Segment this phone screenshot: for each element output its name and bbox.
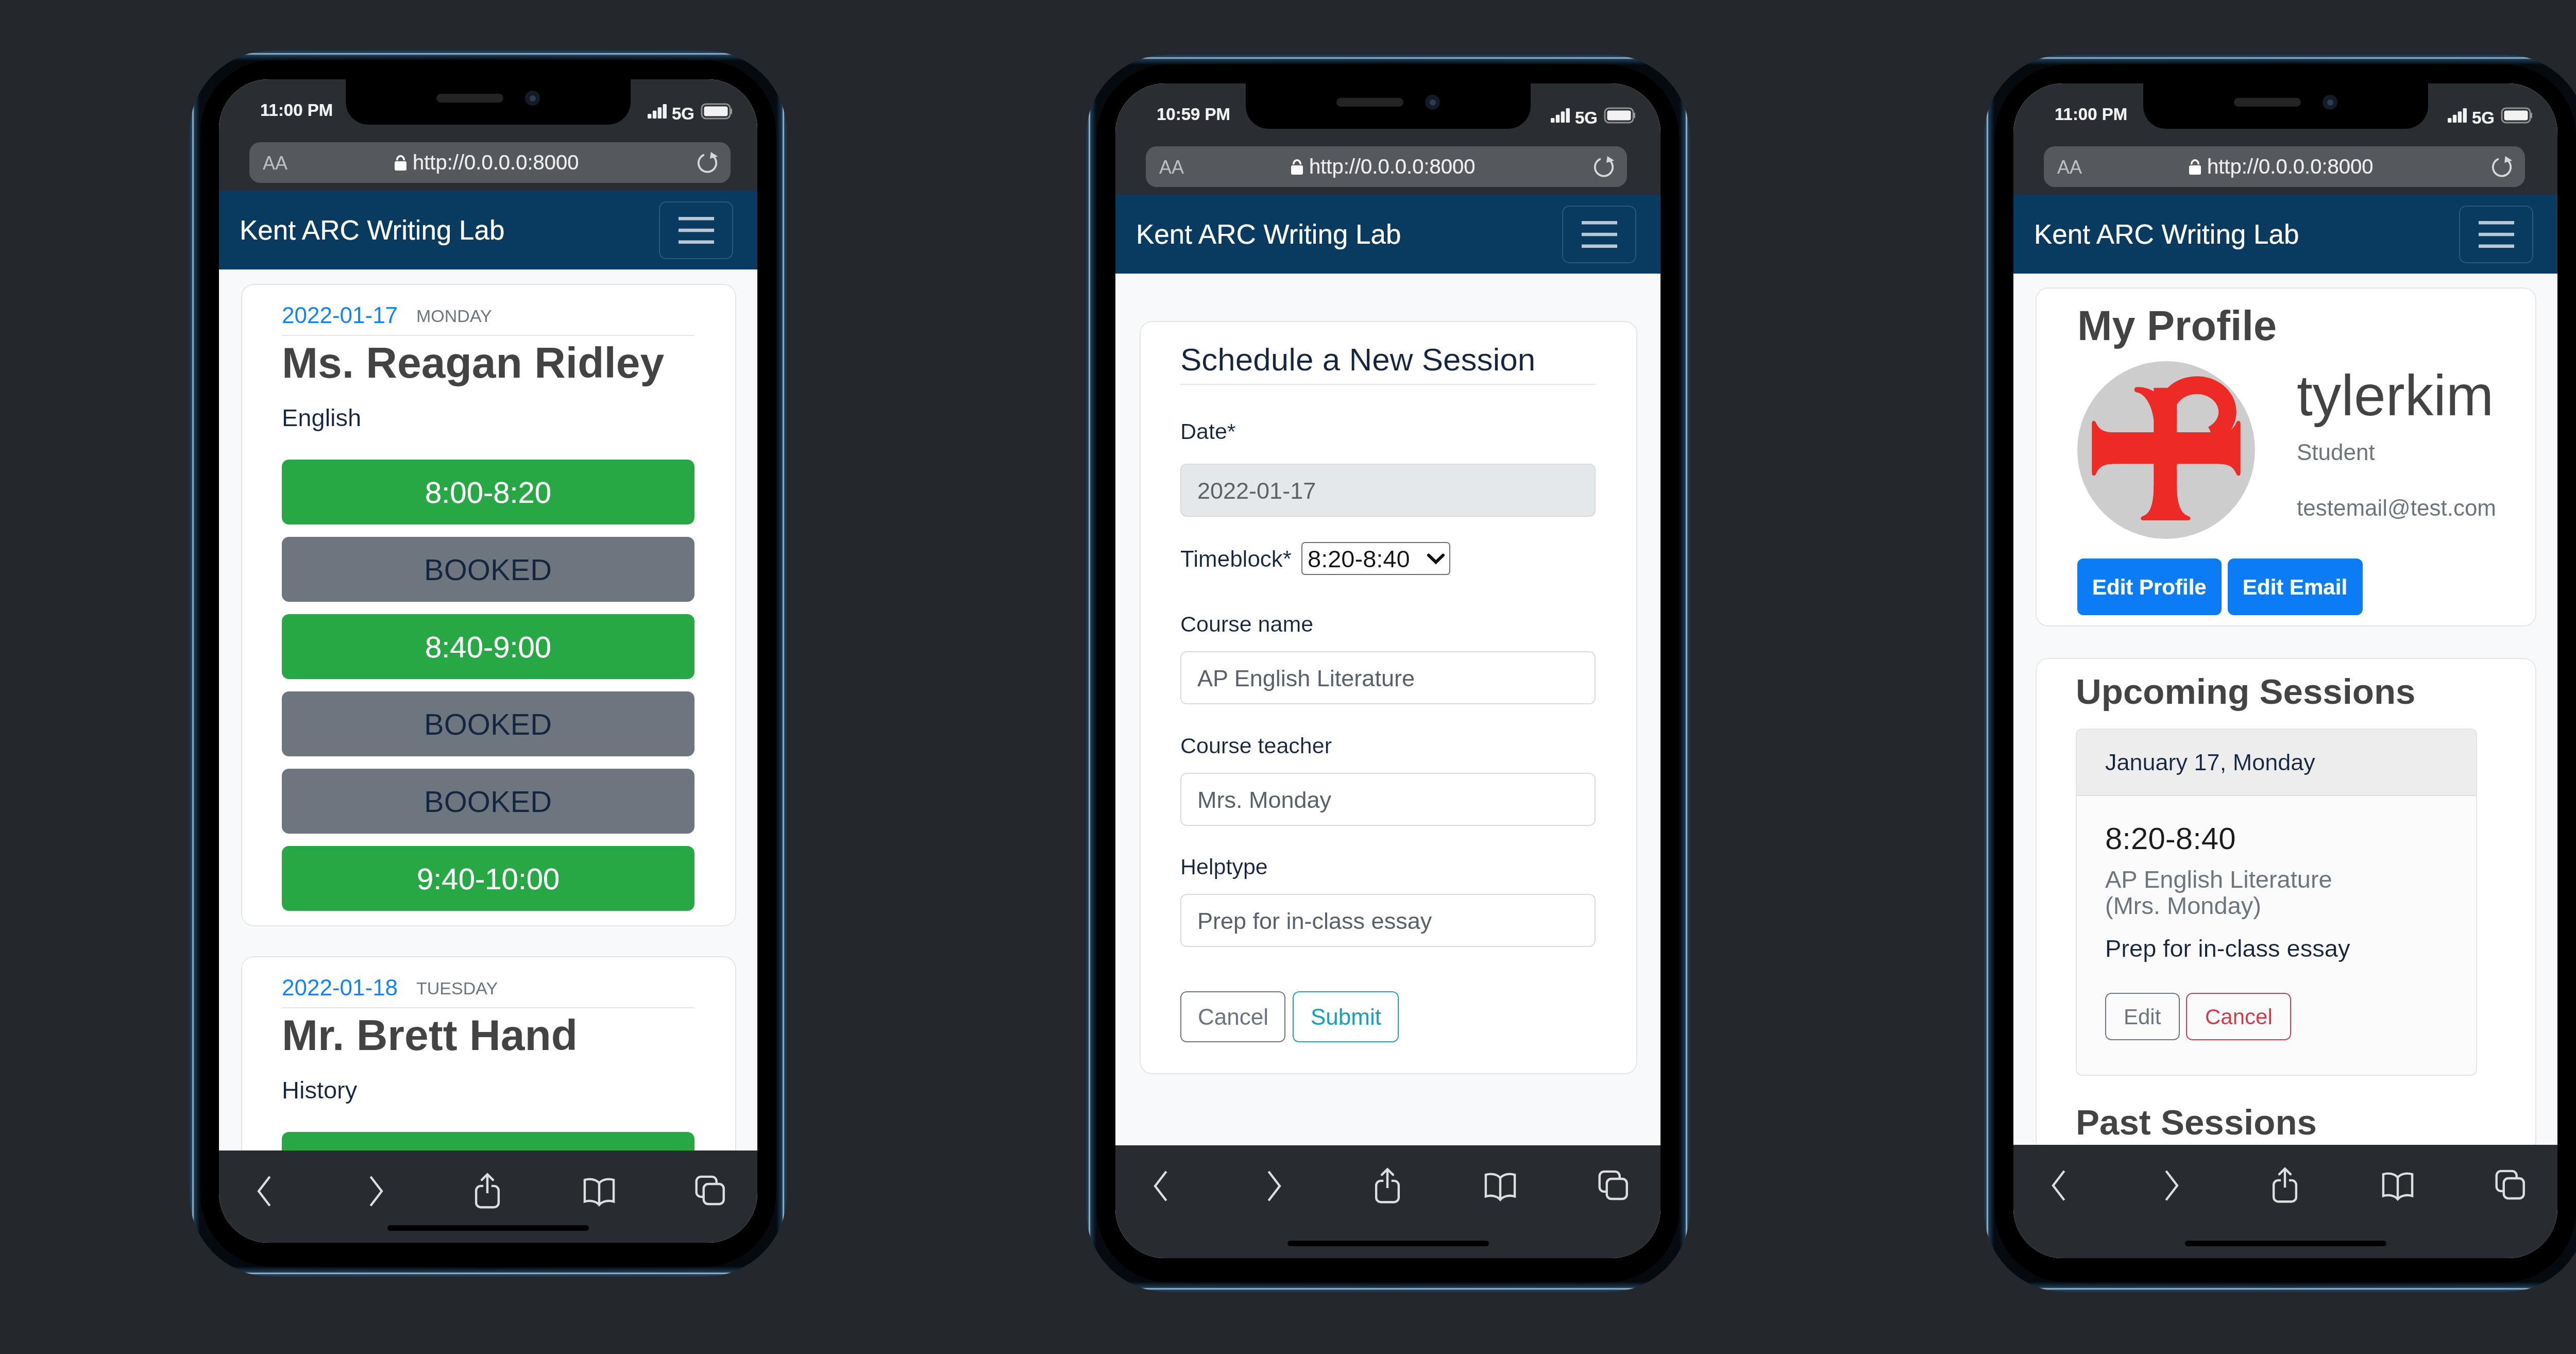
staticText: MONDAY [416, 306, 492, 326]
staticText: AP English Literature [1197, 665, 1415, 691]
staticText: http://0.0.0.0:8000 [413, 151, 579, 174]
staticText: AA [263, 153, 288, 173]
staticText: tylerkim [2297, 364, 2494, 428]
staticText: http://0.0.0.0:8000 [1309, 155, 1476, 178]
button[interactable]: Mrs. Monday [1180, 773, 1596, 826]
button[interactable]: Tabs [682, 1163, 739, 1220]
button[interactable]: 8:00-8:20 [282, 1132, 694, 1197]
staticText: 5G [1575, 108, 1598, 127]
staticText: Kent ARC Writing Lab [1136, 219, 1401, 249]
button[interactable]: Back [236, 1163, 293, 1220]
button[interactable]: Bookmarks [2369, 1157, 2426, 1214]
staticText: 11:00 PM [260, 100, 333, 120]
button[interactable]: Back [1132, 1158, 1189, 1214]
staticText: BOOKED [424, 785, 552, 818]
staticText: 9:40-10:00 [417, 862, 560, 895]
staticText: Ms. Reagan Ridley [282, 338, 665, 387]
staticText: 5G [672, 104, 695, 123]
staticText: 8:20-8:40 [2105, 821, 2236, 856]
staticText: Cancel [1198, 1004, 1268, 1029]
staticText: Course teacher [1180, 733, 1332, 758]
button[interactable]: Edit Email [2228, 558, 2363, 615]
button[interactable]: Prep for in-class essay [1180, 894, 1596, 947]
staticText: Edit Email [2243, 575, 2348, 599]
staticText: Date* [1180, 419, 1236, 444]
button[interactable]: Share [459, 1163, 516, 1220]
staticText: 10:59 PM [1157, 105, 1231, 124]
button[interactable]: 9:40-10:00 [282, 846, 694, 911]
button[interactable]: 2022-01-17 [1180, 464, 1596, 517]
button[interactable]: Forward [348, 1163, 404, 1220]
staticText: Upcoming Sessions [2076, 672, 2416, 712]
staticText: 2022-01-17 [282, 302, 398, 328]
staticText: Timeblock* [1180, 546, 1292, 571]
staticText: January 17, Monday [2105, 749, 2315, 775]
staticText: 8:00-8:20 [425, 1148, 552, 1181]
button[interactable]: Share [2257, 1157, 2313, 1214]
button[interactable]: BOOKED [282, 537, 694, 602]
staticText: 2022-01-17 [1197, 478, 1316, 503]
staticText: TUESDAY [416, 978, 498, 998]
staticText: AA [1159, 157, 1184, 177]
button[interactable]: BOOKED [282, 691, 694, 756]
staticText: Prep for in-class essay [1197, 908, 1432, 934]
staticText: Cancel [2205, 1005, 2273, 1029]
staticText: BOOKED [424, 553, 552, 586]
button[interactable]: Forward [2143, 1157, 2200, 1214]
button[interactable]: Edit Profile [2077, 558, 2222, 615]
staticText: 8:40-9:00 [425, 630, 552, 664]
staticText: 2022-01-18 [282, 975, 398, 1000]
button[interactable]: Bookmarks [1472, 1158, 1529, 1214]
staticText: Edit Profile [2092, 575, 2207, 599]
staticText: Course name [1180, 612, 1314, 636]
button[interactable]: Cancel [2186, 993, 2291, 1040]
button[interactable]: 8:20-8:40 [1301, 542, 1450, 575]
staticText: Past Sessions [2076, 1103, 2317, 1142]
staticText: Submit [1311, 1004, 1381, 1029]
staticText: English [282, 404, 362, 431]
staticText: Kent ARC Writing Lab [2034, 219, 2299, 249]
staticText: AA [2057, 157, 2082, 177]
button[interactable]: 8:40-9:00 [282, 614, 694, 679]
staticText: Helptype [1180, 854, 1268, 879]
button[interactable]: Open menu [659, 201, 733, 259]
staticText: 11:00 PM [2055, 105, 2128, 124]
staticText: testemail@test.com [2297, 495, 2496, 520]
button[interactable]: AA [1146, 146, 1627, 187]
staticText: http://0.0.0.0:8000 [2207, 155, 2374, 178]
staticText: Schedule a New Session [1180, 342, 1536, 377]
staticText: BOOKED [424, 707, 552, 741]
staticText: 5G [2472, 108, 2495, 127]
button[interactable]: Tabs [2482, 1157, 2539, 1214]
staticText: Student [2297, 439, 2375, 465]
staticText: Edit [2124, 1005, 2161, 1029]
staticText: AP English Literature (Mrs. Monday) [2105, 866, 2382, 919]
staticText: My Profile [2077, 302, 2277, 349]
staticText: Mr. Brett Hand [282, 1011, 578, 1059]
button[interactable]: Cancel [1180, 991, 1285, 1042]
button[interactable]: Tabs [1585, 1158, 1642, 1214]
button[interactable]: AA [249, 142, 731, 183]
button[interactable]: Open menu [1562, 206, 1636, 263]
button[interactable]: Back [2030, 1157, 2087, 1214]
button[interactable]: Bookmarks [571, 1163, 628, 1220]
button[interactable]: AP English Literature [1180, 651, 1596, 704]
staticText: 8:00-8:20 [425, 476, 552, 509]
staticText: Prep for in-class essay [2105, 935, 2350, 962]
button[interactable]: 8:00-8:20 [282, 460, 694, 524]
button[interactable]: Submit [1293, 991, 1399, 1042]
button[interactable]: Edit [2105, 993, 2180, 1040]
button[interactable]: BOOKED [282, 769, 694, 834]
button[interactable]: Open menu [2459, 206, 2533, 263]
button[interactable]: Forward [1246, 1158, 1302, 1214]
staticText: History [282, 1076, 358, 1104]
staticText: Kent ARC Writing Lab [240, 215, 505, 245]
staticText: Mrs. Monday [1197, 787, 1332, 813]
button[interactable]: AA [2044, 146, 2525, 187]
staticText: 8:20-8:40 [1308, 545, 1410, 572]
button[interactable]: Share [1359, 1158, 1416, 1214]
